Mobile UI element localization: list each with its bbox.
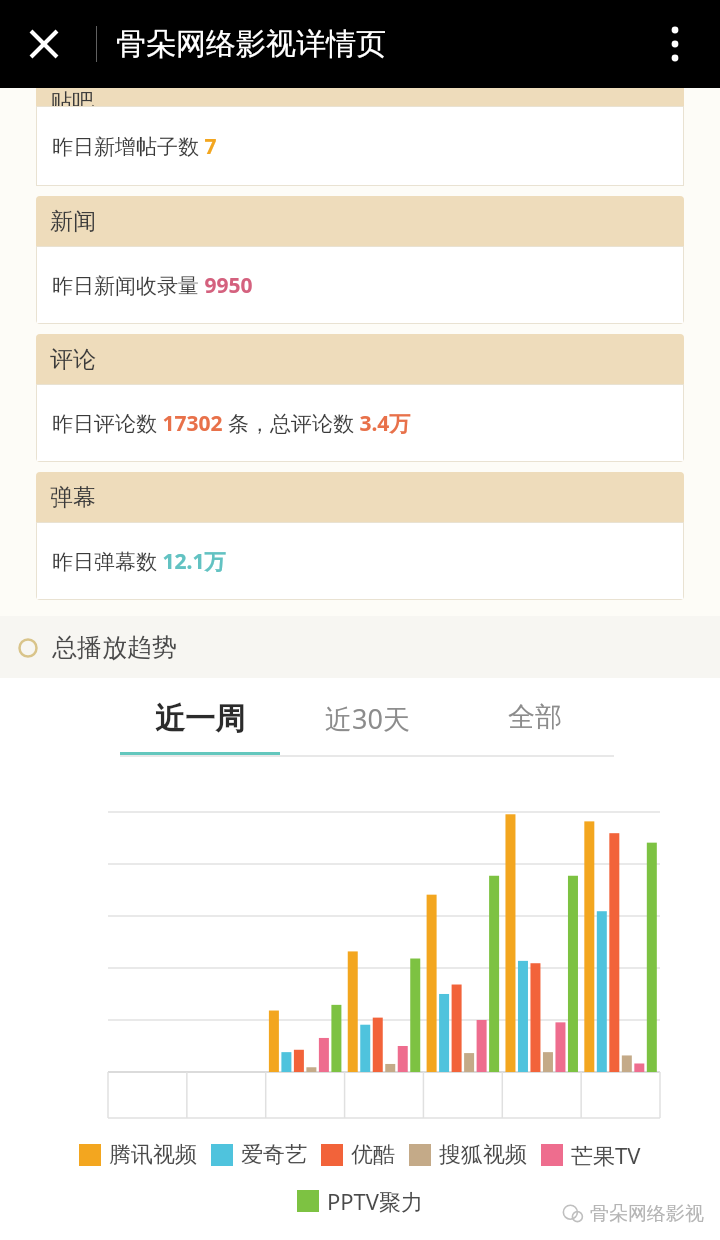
staticText: 近一周 bbox=[155, 700, 245, 738]
staticText: 评论 bbox=[50, 345, 96, 374]
staticText: 昨日评论数 17302 条，总评论数 3.4万 bbox=[52, 409, 411, 438]
button[interactable]: Close bbox=[16, 16, 72, 72]
button[interactable]: 全部 bbox=[455, 700, 615, 751]
button[interactable]: 腾讯视频 bbox=[79, 1141, 197, 1169]
staticText: 近30天 bbox=[325, 700, 410, 737]
button[interactable]: 贴吧 bbox=[36, 88, 684, 186]
staticText: 骨朵网络影视详情页 bbox=[116, 25, 386, 63]
staticText: 腾讯视频 bbox=[109, 1141, 197, 1169]
staticText: 优酷 bbox=[351, 1141, 395, 1169]
staticText: 芒果TV bbox=[571, 1140, 641, 1170]
button[interactable]: 近一周 bbox=[120, 700, 280, 755]
staticText: 总播放趋势 bbox=[52, 632, 177, 663]
staticText: 全部 bbox=[508, 700, 562, 734]
button[interactable]: 新闻 bbox=[36, 196, 684, 324]
staticText: 贴吧 bbox=[50, 88, 94, 106]
button[interactable]: 优酷 bbox=[321, 1141, 395, 1169]
staticText: 爱奇艺 bbox=[241, 1141, 307, 1169]
button[interactable]: 爱奇艺 bbox=[211, 1141, 307, 1169]
staticText: 骨朵网络影视 bbox=[590, 1202, 704, 1226]
staticText: 昨日弹幕数 12.1万 bbox=[52, 547, 226, 576]
button[interactable]: 弹幕 bbox=[36, 472, 684, 600]
button[interactable]: 芒果TV bbox=[541, 1140, 641, 1170]
staticText: 昨日新闻收录量 9950 bbox=[52, 271, 253, 300]
button[interactable]: 近30天 bbox=[280, 700, 455, 754]
staticText: 新闻 bbox=[50, 207, 96, 236]
staticText: PPTV聚力 bbox=[327, 1186, 424, 1216]
button[interactable]: 搜狐视频 bbox=[409, 1141, 527, 1169]
staticText: 弹幕 bbox=[50, 483, 96, 512]
button[interactable]: 评论 bbox=[36, 334, 684, 462]
button[interactable]: More options bbox=[650, 19, 700, 69]
staticText: 昨日新增帖子数 7 bbox=[52, 132, 217, 161]
button[interactable]: PPTV聚力 bbox=[297, 1186, 424, 1216]
staticText: 搜狐视频 bbox=[439, 1141, 527, 1169]
